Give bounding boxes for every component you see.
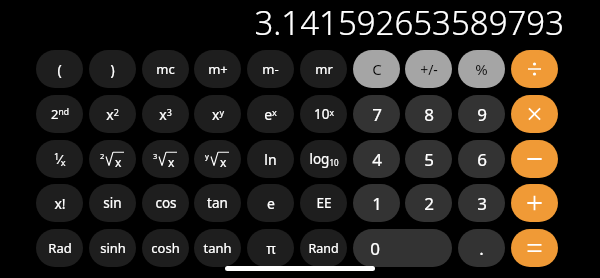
staticText: 5 [424, 148, 434, 171]
button[interactable]: sin [89, 184, 136, 222]
button[interactable]: xy [194, 95, 241, 133]
staticText: xy [212, 105, 224, 124]
button[interactable]: +/- [405, 50, 452, 88]
button[interactable]: x3 [142, 95, 189, 133]
staticText: 6 [477, 148, 487, 171]
button[interactable]: m- [247, 50, 294, 88]
button[interactable]: sinh [89, 229, 136, 267]
button[interactable]: % [458, 50, 505, 88]
staticText: Rand [308, 240, 339, 257]
button[interactable]: π [247, 229, 294, 267]
staticText: ln [264, 150, 277, 169]
button[interactable]: 1 [353, 184, 400, 222]
staticText: 3 [153, 151, 158, 161]
button[interactable]: y root of x [194, 140, 241, 178]
staticText: cos [155, 194, 177, 212]
staticText: ) [110, 60, 115, 79]
button[interactable]: 4 [353, 140, 400, 178]
staticText: x! [54, 194, 66, 213]
staticText: mr [315, 60, 333, 78]
button[interactable]: x2 [89, 95, 136, 133]
staticText: 3 [477, 192, 487, 215]
staticText: 8 [424, 103, 434, 126]
button[interactable]: 2 root of x [89, 140, 136, 178]
staticText: % [475, 59, 488, 79]
staticText: mc [156, 60, 175, 78]
button[interactable]: ) [89, 50, 136, 88]
staticText: x [220, 154, 227, 170]
button[interactable]: 5 [405, 140, 452, 178]
staticText: +/- [420, 60, 438, 79]
button[interactable]: Rad [36, 229, 83, 267]
button[interactable]: 3 root of x [142, 140, 189, 178]
staticText: ex [264, 105, 277, 124]
staticText: x2 [106, 105, 119, 124]
staticText: x [168, 154, 175, 170]
button[interactable]: 3 [458, 184, 505, 222]
staticText: 2nd [51, 105, 69, 123]
staticText: 3.141592653589793 [254, 0, 564, 43]
button[interactable]: 2nd [36, 95, 83, 133]
button[interactable]: tan [194, 184, 241, 222]
staticText: 10x [314, 105, 334, 123]
button[interactable]: ln [247, 140, 294, 178]
staticText: EE [316, 194, 332, 212]
staticText: tanh [203, 239, 232, 257]
staticText: 1 [372, 192, 382, 215]
staticText: π [266, 239, 276, 258]
button[interactable]: one over x [36, 140, 83, 178]
staticText: 0 [370, 237, 380, 260]
button[interactable]: Divide [511, 50, 558, 88]
button[interactable]: mr [300, 50, 347, 88]
staticText: sinh [100, 239, 126, 257]
staticText: C [372, 59, 382, 79]
button[interactable]: mc [142, 50, 189, 88]
staticText: ( [57, 60, 62, 79]
button[interactable]: log10 [300, 140, 347, 178]
staticText: log10 [309, 150, 339, 169]
button[interactable]: . [458, 229, 505, 267]
staticText: x [115, 154, 122, 170]
button[interactable]: Multiply [511, 95, 558, 133]
button[interactable]: m+ [194, 50, 241, 88]
staticText: . [479, 237, 484, 260]
button[interactable]: 7 [353, 95, 400, 133]
button[interactable]: 10x [300, 95, 347, 133]
staticText: 1⁄x [54, 150, 66, 168]
button[interactable]: Plus [511, 184, 558, 222]
button[interactable]: C [353, 50, 400, 88]
button[interactable]: Rand [300, 229, 347, 267]
staticText: 2 [100, 151, 105, 161]
button[interactable]: x! [36, 184, 83, 222]
staticText: sin [103, 194, 122, 212]
button[interactable]: cos [142, 184, 189, 222]
button[interactable]: 0 [353, 229, 452, 267]
staticText: x3 [159, 105, 172, 124]
staticText: y [205, 151, 209, 161]
staticText: m+ [208, 60, 228, 78]
staticText: Rad [48, 239, 72, 257]
button[interactable]: Minus [511, 140, 558, 178]
staticText: cosh [151, 239, 180, 257]
button[interactable]: ex [247, 95, 294, 133]
staticText: 9 [477, 103, 487, 126]
staticText: 4 [372, 148, 382, 171]
staticText: e [267, 194, 275, 213]
button[interactable]: ( [36, 50, 83, 88]
staticText: tan [207, 194, 228, 212]
staticText: 2 [424, 192, 434, 215]
button[interactable]: EE [300, 184, 347, 222]
button[interactable]: 8 [405, 95, 452, 133]
button[interactable]: Equals [511, 229, 558, 267]
button[interactable]: e [247, 184, 294, 222]
staticText: 7 [372, 103, 382, 126]
button[interactable]: 2 [405, 184, 452, 222]
button[interactable]: 9 [458, 95, 505, 133]
button[interactable]: 6 [458, 140, 505, 178]
button[interactable]: tanh [194, 229, 241, 267]
button[interactable]: cosh [142, 229, 189, 267]
staticText: m- [262, 60, 279, 78]
